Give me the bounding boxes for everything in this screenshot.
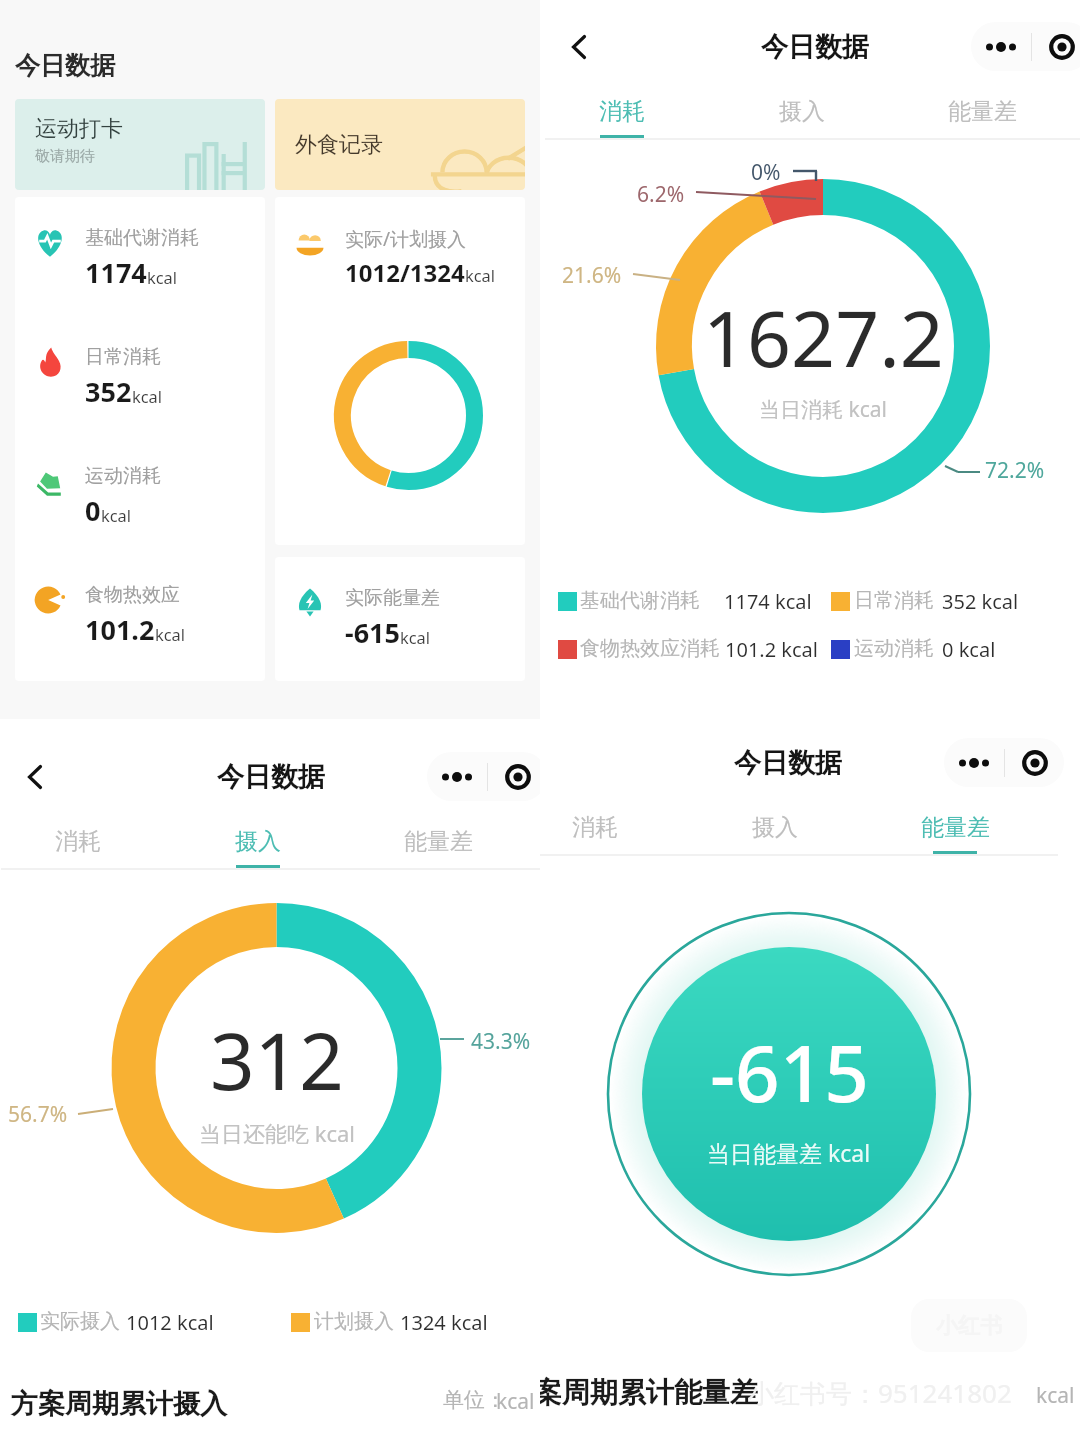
staticText: kcal <box>101 504 132 526</box>
staticText: 56.7% <box>8 1100 68 1129</box>
staticText: kcal <box>496 1387 535 1416</box>
staticText: 43.3% <box>471 1027 531 1056</box>
button[interactable]: 外食记录 <box>275 99 525 190</box>
staticText: 1174 <box>85 254 147 291</box>
staticText: 方案周期累计摄入 <box>11 1387 227 1421</box>
staticText: 今日数据 <box>761 30 869 64</box>
staticText: 消耗 <box>572 813 618 842</box>
staticText: 计划摄入 <box>314 1309 394 1334</box>
staticText: 352 kcal <box>942 588 1019 615</box>
staticText: 当日还能吃 kcal <box>199 1118 356 1148</box>
staticText: 当日消耗 kcal <box>759 395 887 424</box>
button[interactable]: 摄入 <box>712 94 892 140</box>
button[interactable]: Close <box>1005 738 1064 787</box>
button[interactable]: 运动打卡 <box>15 99 265 190</box>
staticText: 1012 kcal <box>126 1309 214 1336</box>
staticText: 摄入 <box>752 813 798 842</box>
staticText: 摄入 <box>235 827 281 856</box>
staticText: 1324 kcal <box>400 1309 488 1336</box>
staticText: 日常消耗 <box>854 588 934 613</box>
staticText: 21.6% <box>562 261 622 290</box>
button[interactable]: 摄入 <box>685 810 865 856</box>
button[interactable]: Close <box>488 752 540 801</box>
staticText: 日常消耗 <box>85 345 161 369</box>
staticText: 能量差 <box>921 813 990 842</box>
staticText: 运动消耗 <box>85 464 161 488</box>
button[interactable]: 消耗 <box>540 94 712 140</box>
staticText: 今日数据 <box>15 50 115 81</box>
staticText: 案周期累计能量差 <box>540 1375 758 1410</box>
staticText: kcal <box>465 264 496 286</box>
staticText: 72.2% <box>985 456 1045 485</box>
staticText: 摄入 <box>779 97 825 126</box>
staticText: 小红书号：951241802 <box>748 1375 1012 1411</box>
button[interactable]: 消耗 <box>0 824 168 870</box>
staticText: -615 <box>345 614 400 651</box>
staticText: 外食记录 <box>295 131 383 159</box>
staticText: 今日数据 <box>734 746 842 780</box>
staticText: -615 <box>710 1019 869 1119</box>
staticText: 食物热效应消耗 <box>580 636 720 661</box>
staticText: 0 kcal <box>942 636 996 663</box>
staticText: 运动打卡 <box>35 115 123 143</box>
staticText: 食物热效应 <box>85 583 180 607</box>
staticText: 352 <box>85 373 132 410</box>
staticText: 单位： <box>443 1387 506 1413</box>
button[interactable]: 摄入 <box>168 824 348 870</box>
staticText: 312 <box>210 1007 344 1107</box>
staticText: 消耗 <box>599 97 645 126</box>
button[interactable]: More options <box>971 22 1031 71</box>
staticText: kcal <box>147 266 178 288</box>
button[interactable]: 能量差 <box>348 824 528 870</box>
staticText: 101.2 kcal <box>725 636 818 663</box>
staticText: 敬请期待 <box>35 147 95 166</box>
staticText: 基础代谢消耗 <box>580 588 700 613</box>
staticText: kcal <box>1036 1381 1075 1410</box>
staticText: 能量差 <box>948 97 1017 126</box>
staticText: 实际能量差 <box>345 586 440 610</box>
button[interactable]: More options <box>944 738 1004 787</box>
button[interactable]: 消耗 <box>540 810 685 856</box>
staticText: 1012/1324 <box>345 256 465 289</box>
staticText: 101.2 <box>85 611 155 648</box>
staticText: 今日数据 <box>217 760 325 794</box>
staticText: 0 <box>85 492 101 529</box>
staticText: 消耗 <box>55 827 101 856</box>
button[interactable]: 能量差 <box>892 94 1072 140</box>
button[interactable]: Back <box>5 747 65 807</box>
button[interactable]: Close <box>1032 22 1080 71</box>
staticText: kcal <box>132 385 163 407</box>
button[interactable]: More options <box>427 752 487 801</box>
staticText: 能量差 <box>404 827 473 856</box>
staticText: 6.2% <box>637 180 685 209</box>
staticText: 0% <box>751 158 781 187</box>
staticText: kcal <box>400 626 431 648</box>
staticText: 实际摄入 <box>40 1309 120 1334</box>
staticText: 运动消耗 <box>854 636 934 661</box>
button[interactable]: Back <box>549 17 609 77</box>
staticText: 1627.2 <box>703 285 944 385</box>
staticText: 实际/计划摄入 <box>345 226 467 252</box>
staticText: 1174 kcal <box>724 588 812 615</box>
staticText: 基础代谢消耗 <box>85 226 199 250</box>
staticText: 当日能量差 kcal <box>707 1137 871 1168</box>
staticText: kcal <box>155 623 186 645</box>
button[interactable]: 能量差 <box>865 810 1045 856</box>
